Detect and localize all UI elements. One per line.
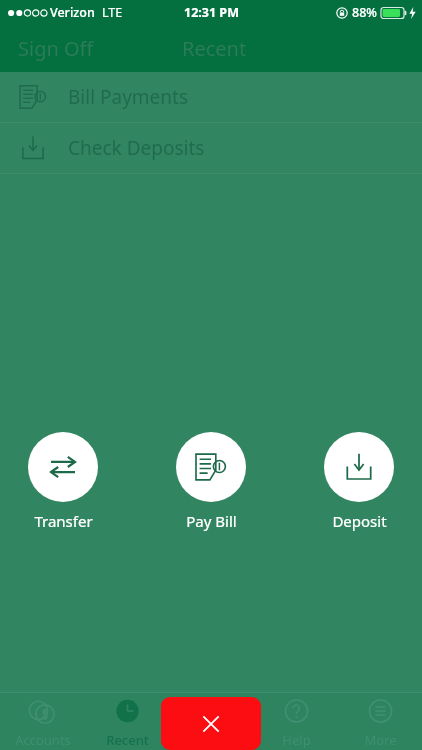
button[interactable]: Pay Bill bbox=[174, 432, 248, 531]
staticText: More bbox=[364, 731, 397, 749]
button[interactable]: Accounts bbox=[0, 692, 85, 750]
staticText: Recent bbox=[182, 35, 247, 62]
staticText: LTE bbox=[102, 4, 123, 21]
staticText: Deposit bbox=[332, 511, 387, 531]
button[interactable]: Check Deposits bbox=[0, 123, 422, 173]
button[interactable]: More bbox=[338, 692, 422, 750]
button[interactable]: Deposit bbox=[322, 432, 396, 531]
staticText: Help bbox=[282, 731, 311, 749]
staticText: Verizon bbox=[50, 4, 95, 21]
staticText: 12:31 PM bbox=[184, 4, 239, 21]
button[interactable]: Sign Off bbox=[0, 27, 112, 70]
button[interactable]: Recent bbox=[178, 27, 251, 70]
staticText: Bill Payments bbox=[68, 84, 189, 110]
button[interactable]: Close bbox=[161, 697, 261, 750]
button[interactable]: Recent bbox=[85, 692, 170, 750]
staticText: Accounts bbox=[15, 731, 71, 749]
staticText: Check Deposits bbox=[68, 135, 205, 161]
staticText: Transfer bbox=[34, 511, 93, 531]
staticText: Pay Bill bbox=[186, 511, 237, 531]
staticText: 88% bbox=[352, 4, 377, 21]
staticText: Sign Off bbox=[18, 35, 94, 62]
button[interactable]: Bill Payments bbox=[0, 72, 422, 122]
button[interactable]: Transfer bbox=[26, 432, 100, 531]
staticText: Recent bbox=[106, 731, 149, 749]
button[interactable]: Help bbox=[254, 692, 338, 750]
